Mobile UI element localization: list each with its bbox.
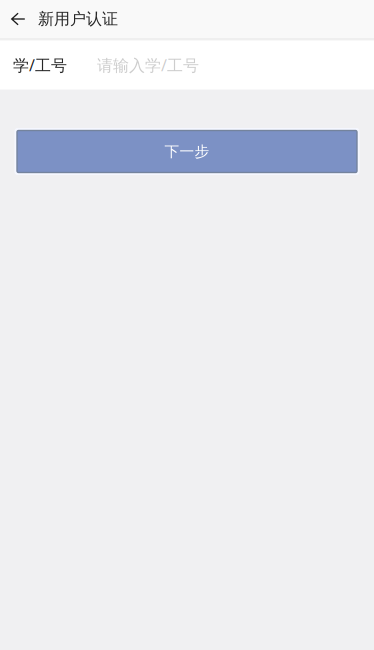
staticText: 请输入学/工号 [97, 54, 199, 76]
staticText: 学/工号 [13, 54, 67, 76]
staticText: 新用户认证 [38, 9, 118, 29]
button[interactable]: 下一步 [14, 128, 359, 175]
button[interactable]: 学/工号 [97, 40, 361, 89]
button[interactable]: Back [6, 0, 30, 38]
staticText: 下一步 [164, 142, 209, 160]
